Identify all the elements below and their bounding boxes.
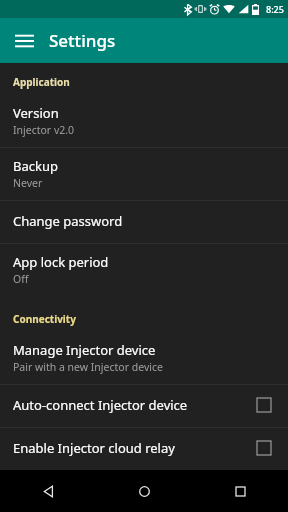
staticText: Pair with a new Injector device — [13, 360, 163, 374]
button[interactable]: Version — [0, 95, 288, 147]
staticText: Auto-connect Injector device — [13, 396, 257, 414]
button[interactable]: Open navigation menu — [8, 25, 40, 57]
staticText: Off — [13, 272, 29, 286]
staticText: App lock period — [13, 253, 109, 271]
staticText: Version — [13, 104, 59, 122]
staticText: Manage Injector device — [13, 341, 156, 359]
staticText: 8:25 — [266, 3, 284, 15]
button[interactable]: Home — [96, 470, 192, 512]
staticText: Change password — [13, 212, 123, 230]
button[interactable]: Backup — [0, 148, 288, 200]
staticText: Injector v2.0 — [13, 123, 75, 137]
staticText: Never — [13, 176, 43, 190]
staticText: Backup — [13, 157, 58, 175]
button[interactable]: Auto-connect Injector device — [0, 385, 288, 427]
button[interactable]: Enable Injector cloud relay — [0, 428, 288, 470]
button[interactable]: Change password — [0, 201, 288, 243]
staticText: Application — [13, 75, 70, 89]
button[interactable]: Manage Injector device — [0, 332, 288, 384]
staticText: Enable Injector cloud relay — [13, 439, 257, 457]
staticText: Connectivity — [13, 312, 76, 326]
button[interactable]: Back — [0, 470, 96, 512]
button[interactable]: Recent apps — [192, 470, 288, 512]
button[interactable]: App lock period — [0, 244, 288, 296]
staticText: Settings — [49, 29, 116, 52]
